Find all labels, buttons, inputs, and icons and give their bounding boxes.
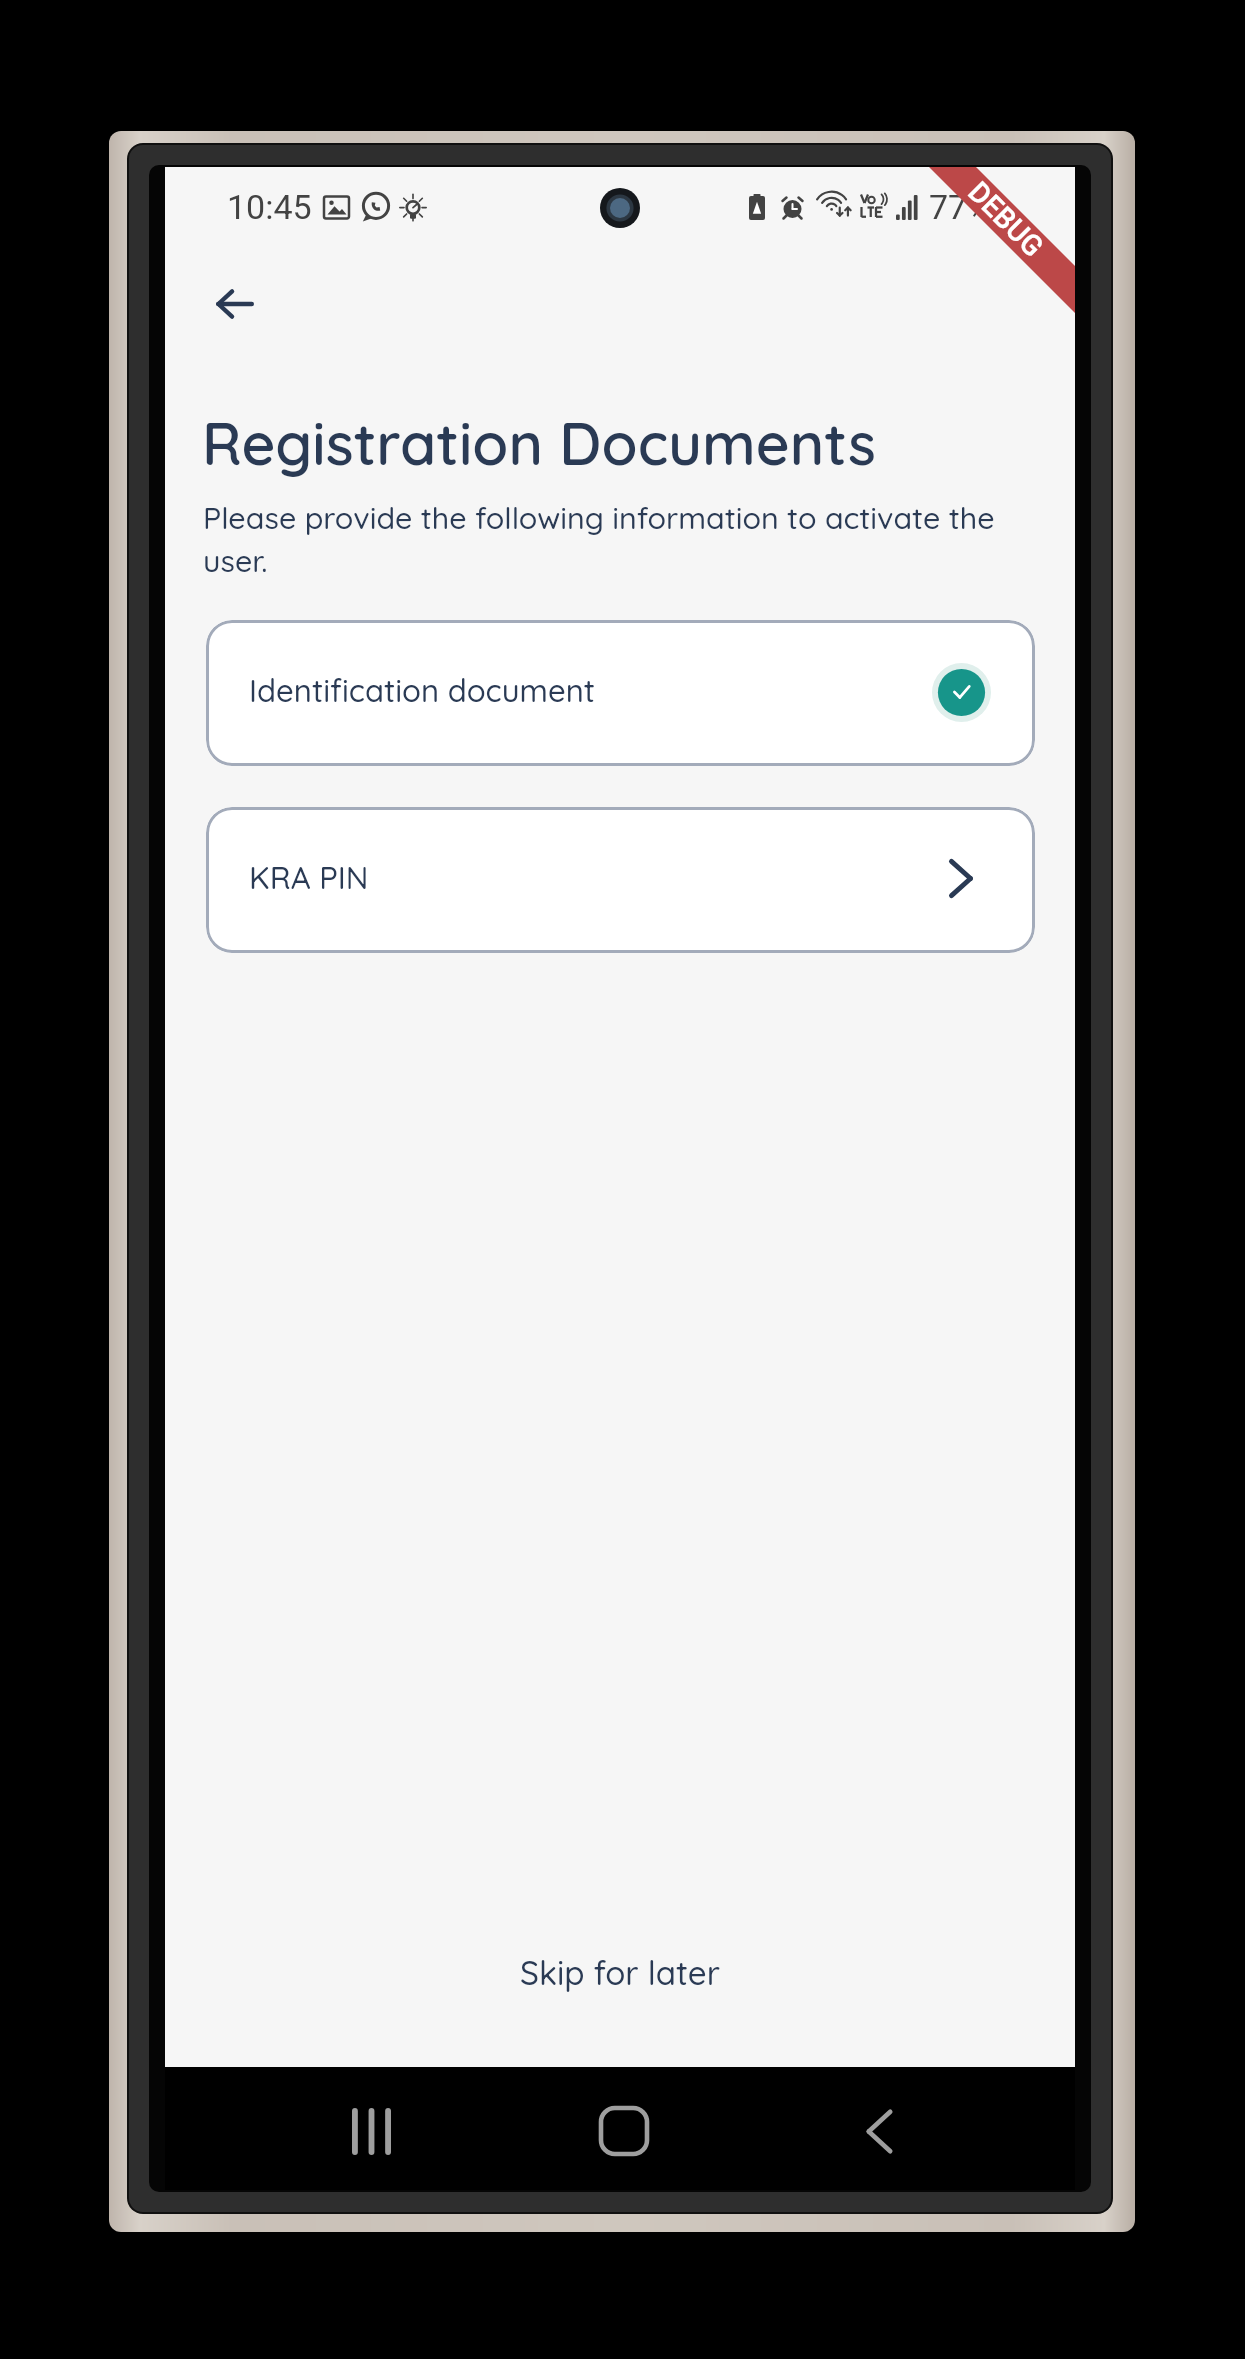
staticText: Registration Documents [202,406,877,479]
button[interactable]: Recents [326,2089,416,2173]
button[interactable]: Back [196,265,274,343]
button[interactable]: KRA PIN [206,807,1035,953]
button[interactable]: Identification document [206,620,1035,766]
button[interactable]: Home [579,2089,669,2173]
button[interactable]: Back [834,2089,924,2173]
staticText: KRA PIN [249,858,369,897]
staticText: DEBUG [962,175,1050,264]
staticText: 10:45 [227,187,312,227]
button[interactable]: Skip for later [165,1922,1075,2022]
staticText: Skip for later [520,1952,720,1993]
staticText: Please provide the following information… [203,499,1015,579]
staticText: 77% [929,187,993,227]
staticText: Identification document [249,671,596,710]
